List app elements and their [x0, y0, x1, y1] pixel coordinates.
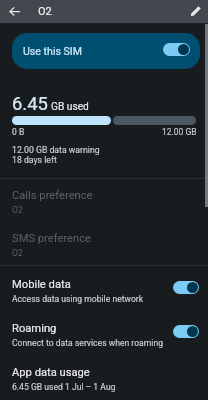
- staticText: 0 B: [12, 127, 25, 137]
- staticText: Mobile data: [12, 278, 71, 291]
- staticText: App data usage: [12, 366, 90, 379]
- staticText: GB used: [51, 101, 89, 113]
- staticText: O2: [38, 5, 52, 18]
- staticText: SMS preference: [12, 232, 92, 245]
- button[interactable]: Edit: [184, 0, 207, 22]
- staticText: Use this SIM: [23, 45, 82, 57]
- button[interactable]: Back: [3, 0, 26, 23]
- staticText: O2: [12, 205, 23, 215]
- button[interactable]: SMS preference: [0, 223, 208, 265]
- button[interactable]: App data usage: [0, 356, 208, 400]
- staticText: 6.45: [12, 93, 48, 115]
- staticText: Calls preference: [12, 189, 93, 202]
- staticText: 12.00 GB: [162, 127, 197, 137]
- staticText: Access data using mobile network: [12, 294, 144, 304]
- staticText: O2: [12, 248, 23, 258]
- button[interactable]: Use this SIM: [12, 33, 200, 69]
- staticText: Roaming: [12, 322, 57, 335]
- staticText: 6.45 GB used 1 Jul – 1 Aug: [12, 382, 116, 392]
- button[interactable]: Calls preference: [0, 180, 208, 223]
- button[interactable]: Mobile data: [0, 268, 208, 312]
- button[interactable]: Switch on: [173, 325, 199, 338]
- button[interactable]: Switch on: [173, 281, 199, 294]
- staticText: 18 days left: [12, 155, 57, 165]
- button[interactable]: Roaming: [0, 312, 208, 356]
- button[interactable]: Switch on: [163, 43, 190, 56]
- staticText: 12.00 GB data warning: [12, 145, 100, 155]
- staticText: Connect to data services when roaming: [12, 338, 163, 348]
